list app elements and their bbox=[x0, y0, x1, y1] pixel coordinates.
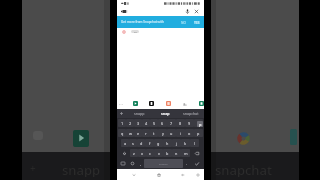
staticText: 1 bbox=[121, 121, 124, 126]
button[interactable]: 9 bbox=[185, 119, 194, 127]
button[interactable]: Enter bbox=[190, 159, 203, 168]
button[interactable]: 2 bbox=[126, 119, 134, 127]
button[interactable]: 3 bbox=[134, 119, 142, 127]
button[interactable]: NO bbox=[180, 20, 186, 25]
staticText: h bbox=[166, 141, 169, 146]
button[interactable]: v bbox=[154, 149, 163, 157]
button[interactable]: w bbox=[126, 129, 134, 137]
staticText: snapchat bbox=[215, 161, 272, 177]
button[interactable]: App bbox=[199, 101, 204, 106]
staticText: d bbox=[140, 141, 143, 146]
button[interactable]: More apps bbox=[118, 102, 123, 107]
button[interactable]: Back bbox=[179, 171, 187, 179]
button[interactable]: u bbox=[167, 129, 176, 137]
button[interactable]: 7 bbox=[167, 119, 176, 127]
button[interactable]: 6 bbox=[158, 119, 167, 127]
button[interactable]: Symbols bbox=[118, 159, 128, 168]
button[interactable]: n bbox=[172, 149, 181, 157]
staticText: g bbox=[157, 141, 160, 146]
staticText: v bbox=[158, 151, 160, 156]
button[interactable]: e bbox=[134, 129, 142, 137]
button[interactable]: r bbox=[142, 129, 150, 137]
staticText: 8 bbox=[179, 121, 182, 126]
staticText: e bbox=[137, 131, 140, 136]
button[interactable]: Backspace bbox=[190, 149, 203, 157]
button[interactable]: t bbox=[150, 129, 158, 137]
button[interactable]: b bbox=[163, 149, 172, 157]
button[interactable]: Contacts bbox=[182, 101, 188, 107]
button[interactable]: c bbox=[146, 149, 154, 157]
button[interactable]: snap bbox=[152, 109, 178, 118]
button[interactable]: Hide keyboard bbox=[130, 171, 138, 179]
button[interactable]: 5 bbox=[150, 119, 158, 127]
button[interactable]: a bbox=[121, 139, 129, 147]
staticText: z bbox=[133, 151, 135, 156]
button[interactable]: alt bbox=[131, 30, 139, 33]
staticText: c bbox=[149, 151, 151, 156]
staticText: Get more from Snapchat with suggestions bbox=[121, 20, 171, 24]
button[interactable]: Recent bbox=[122, 30, 126, 34]
button[interactable]: YES bbox=[193, 20, 201, 25]
button[interactable]: j bbox=[172, 139, 181, 147]
button[interactable]: Close bbox=[193, 8, 200, 15]
staticText: w bbox=[129, 131, 132, 136]
button[interactable]: Voice search bbox=[184, 8, 191, 15]
button[interactable]: snapchat bbox=[178, 109, 204, 118]
button[interactable]: o bbox=[185, 129, 194, 137]
staticText: l bbox=[194, 141, 195, 146]
button[interactable]: App bbox=[133, 101, 138, 106]
button[interactable]: q bbox=[118, 129, 126, 137]
staticText: YES bbox=[194, 21, 200, 25]
button[interactable]: f bbox=[145, 139, 154, 147]
button[interactable]: m bbox=[181, 149, 190, 157]
staticText: snapchat bbox=[183, 111, 199, 116]
staticText: . bbox=[186, 161, 188, 166]
button[interactable]: s bbox=[129, 139, 137, 147]
staticText: o bbox=[188, 131, 191, 136]
button[interactable]: 4 bbox=[142, 119, 150, 127]
button[interactable]: Comma bbox=[137, 159, 144, 168]
button[interactable]: 8 bbox=[176, 119, 185, 127]
staticText: 0 bbox=[197, 121, 200, 126]
staticText: b bbox=[166, 151, 169, 156]
staticText: p bbox=[199, 122, 202, 127]
staticText: snapp bbox=[134, 111, 145, 116]
staticText: i bbox=[180, 131, 181, 136]
staticText: a bbox=[124, 141, 127, 146]
button[interactable]: App bbox=[166, 101, 171, 106]
staticText: 2 bbox=[129, 121, 132, 126]
button[interactable]: i bbox=[176, 129, 185, 137]
button[interactable]: z bbox=[130, 149, 138, 157]
button[interactable]: Home bbox=[155, 171, 163, 179]
staticText: p bbox=[197, 131, 200, 136]
staticText: 3 bbox=[137, 121, 140, 126]
staticText: , bbox=[140, 161, 142, 166]
button[interactable]: h bbox=[163, 139, 172, 147]
staticText: NO bbox=[181, 21, 186, 25]
button[interactable]: Expand toolbar bbox=[117, 109, 126, 118]
button[interactable]: Emoji bbox=[128, 159, 137, 168]
staticText: snapp bbox=[62, 161, 101, 177]
button[interactable]: App bbox=[149, 101, 154, 106]
staticText: alt bbox=[134, 30, 137, 33]
staticText: t bbox=[153, 131, 155, 136]
staticText: 4 bbox=[145, 121, 148, 126]
staticText: q bbox=[121, 131, 124, 136]
button[interactable]: d bbox=[137, 139, 145, 147]
button[interactable]: Recent apps bbox=[194, 171, 202, 179]
staticText: k bbox=[184, 141, 187, 146]
staticText: 5 bbox=[153, 121, 156, 126]
button[interactable]: l bbox=[190, 139, 199, 147]
staticText: f bbox=[149, 141, 151, 146]
button[interactable]: g bbox=[154, 139, 163, 147]
button[interactable]: Space bbox=[144, 159, 183, 168]
button[interactable]: k bbox=[181, 139, 190, 147]
button[interactable]: 1 bbox=[118, 119, 126, 127]
button[interactable]: 0 bbox=[194, 119, 203, 127]
button[interactable]: x bbox=[138, 149, 146, 157]
button[interactable]: y bbox=[158, 129, 167, 137]
button[interactable]: p bbox=[194, 129, 203, 137]
button[interactable]: Shift bbox=[118, 149, 130, 157]
button[interactable]: Period bbox=[183, 159, 190, 168]
button[interactable]: snapp bbox=[126, 109, 152, 118]
